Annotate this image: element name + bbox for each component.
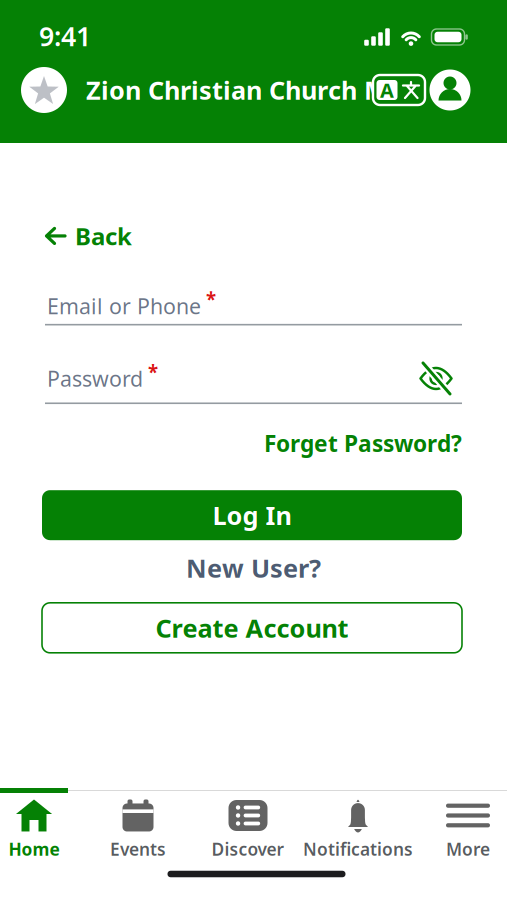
staticText: Events <box>110 837 166 860</box>
button[interactable]: Home <box>0 800 84 860</box>
staticText: Create Account <box>155 611 348 645</box>
staticText: New User? <box>186 551 321 585</box>
button[interactable]: More <box>418 800 507 860</box>
staticText: Forget Password? <box>264 428 462 458</box>
staticText: Notifications <box>303 837 413 860</box>
staticText: Back <box>75 220 132 252</box>
button[interactable]: Create Account <box>42 603 462 653</box>
staticText: Log In <box>212 498 291 532</box>
button[interactable]: Forget Password? <box>264 428 462 458</box>
button[interactable]: Translate <box>373 75 425 105</box>
button[interactable]: Account <box>429 69 470 110</box>
button[interactable]: Notifications <box>308 800 408 860</box>
button[interactable]: Log In <box>42 490 462 540</box>
button[interactable]: Show password <box>419 363 453 393</box>
staticText: 9:41 <box>39 18 91 54</box>
staticText: Home <box>8 837 59 860</box>
staticText: * <box>148 359 158 384</box>
button[interactable]: Discover <box>198 800 298 860</box>
staticText: * <box>206 287 216 311</box>
staticText: More <box>446 837 490 860</box>
button[interactable]: Events <box>88 800 188 860</box>
staticText: Zion Christian Church Mbungo <box>86 73 468 107</box>
button[interactable]: Back <box>44 220 132 252</box>
staticText: Password <box>47 364 143 393</box>
staticText: A <box>380 77 394 103</box>
staticText: Discover <box>211 837 284 860</box>
staticText: Email or Phone <box>47 292 201 320</box>
